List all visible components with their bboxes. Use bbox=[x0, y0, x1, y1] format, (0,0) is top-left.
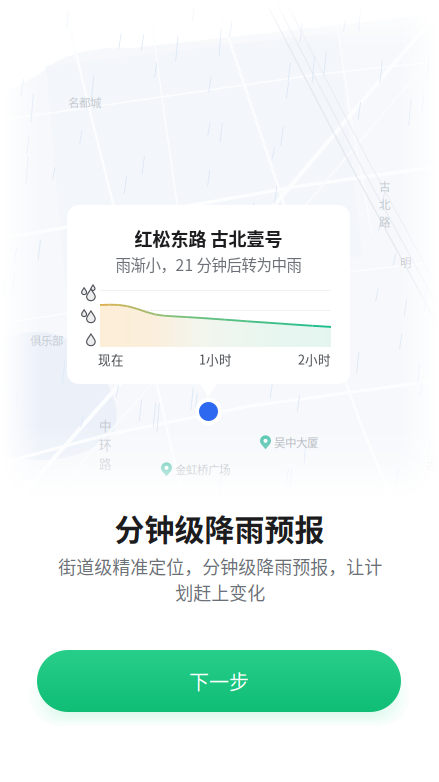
staticText: 中 bbox=[99, 416, 112, 434]
staticText: 分钟级降雨预报 bbox=[114, 506, 324, 549]
staticText: 金虹桥广场 bbox=[175, 461, 230, 478]
button[interactable]: 下一步 bbox=[37, 650, 401, 712]
staticText: 吴中大厦 bbox=[274, 434, 318, 451]
staticText: 下一步 bbox=[189, 666, 249, 695]
staticText: 北 bbox=[379, 196, 390, 212]
staticText: 现在 bbox=[98, 350, 124, 368]
staticText: 街道级精准定位，分钟级降雨预报，让计划赶上变化 bbox=[58, 553, 382, 605]
staticText: 路 bbox=[379, 213, 390, 230]
staticText: 名都城 bbox=[68, 94, 101, 111]
staticText: 环 bbox=[99, 435, 112, 453]
staticText: 1小时 bbox=[199, 350, 232, 368]
staticText: 明 bbox=[400, 254, 411, 271]
staticText: 古 bbox=[379, 178, 390, 195]
staticText: 红松东路 古北壹号 bbox=[134, 225, 282, 251]
staticText: 路 bbox=[99, 454, 112, 472]
staticText: 雨渐小，21 分钟后转为中雨 bbox=[115, 253, 301, 275]
staticText: 2小时 bbox=[298, 350, 331, 368]
staticText: 俱乐部 bbox=[30, 332, 63, 349]
